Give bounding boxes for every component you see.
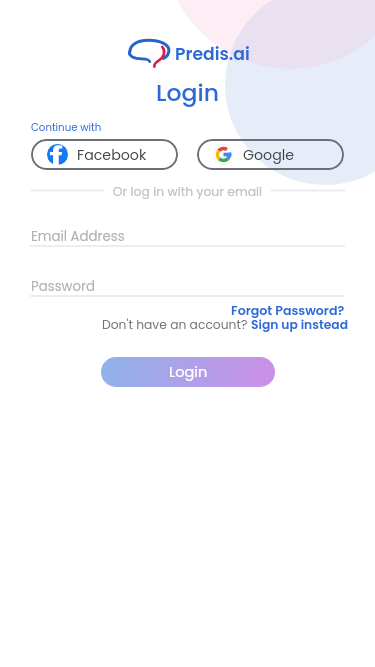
- button[interactable]: Login: [101, 357, 275, 387]
- staticText: Password: [31, 277, 95, 296]
- staticText: Continue with: [31, 120, 102, 134]
- staticText: Don't have an account?: [102, 316, 248, 333]
- button[interactable]: Sign up instead: [251, 316, 348, 333]
- staticText: Or log in with your email: [0, 183, 375, 200]
- staticText: Forgot Password?: [231, 302, 345, 320]
- staticText: Login: [0, 76, 375, 109]
- staticText: Predis.ai: [175, 42, 250, 66]
- staticText: Sign up instead: [251, 316, 348, 333]
- staticText: Login: [169, 362, 208, 382]
- button[interactable]: Forgot Password?: [231, 302, 345, 320]
- staticText: Email Address: [31, 227, 125, 246]
- button[interactable]: Google: [197, 139, 344, 170]
- staticText: Facebook: [77, 145, 147, 165]
- staticText: Google: [243, 145, 295, 165]
- button[interactable]: Facebook: [31, 139, 178, 170]
